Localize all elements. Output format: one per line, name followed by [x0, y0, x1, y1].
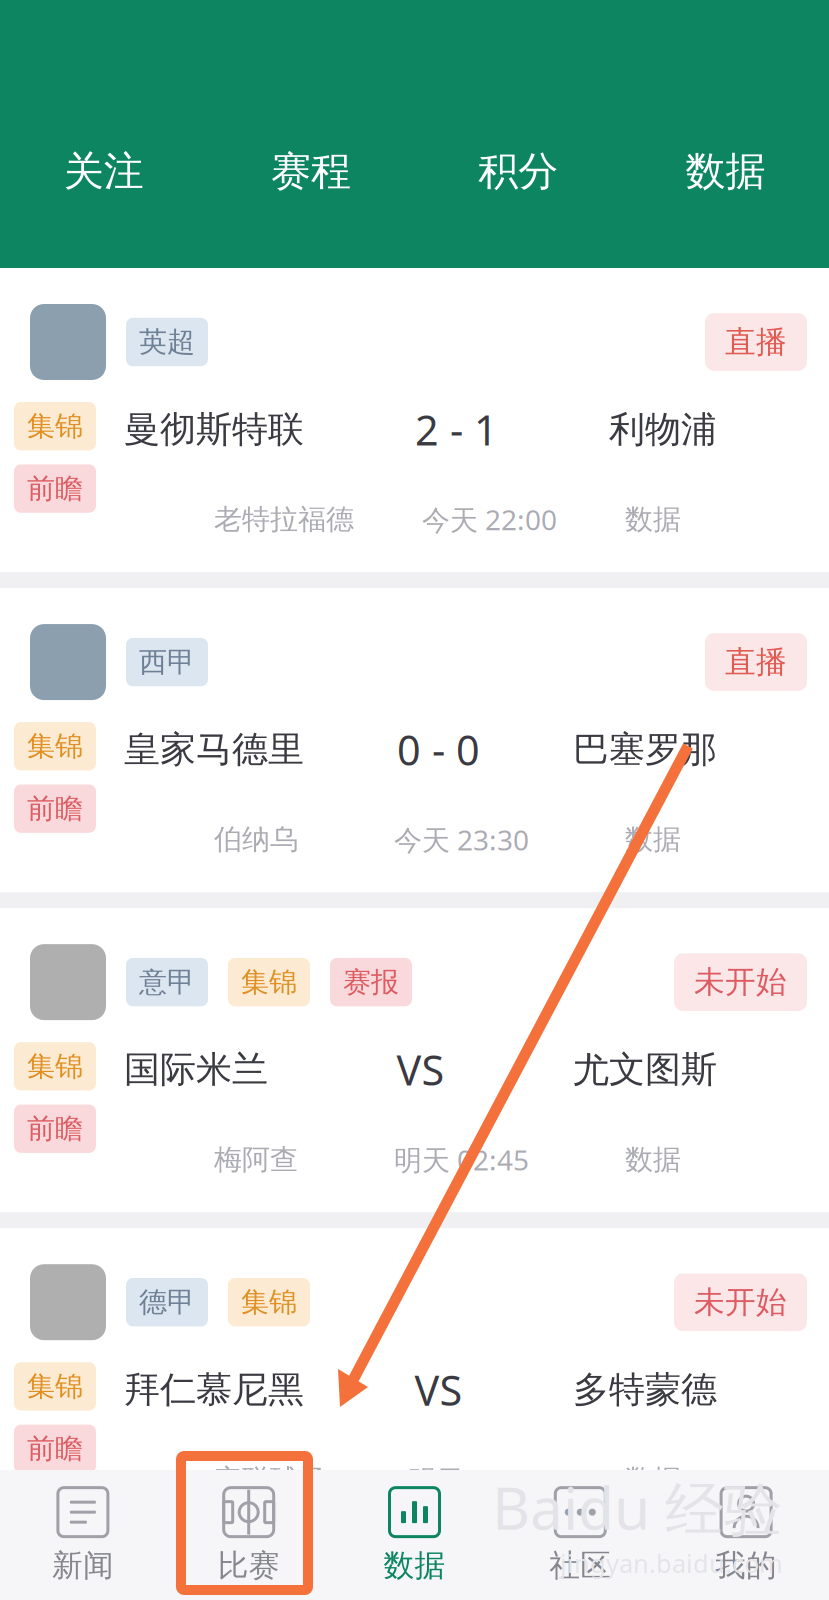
- staticText: 社区: [549, 1547, 611, 1584]
- staticText: 前瞻: [27, 791, 83, 826]
- staticText: VS: [414, 1362, 462, 1417]
- staticText: 2 - 1: [415, 402, 498, 457]
- staticText: 集锦: [27, 729, 83, 763]
- staticText: 集锦: [241, 965, 297, 999]
- staticText: VS: [396, 1042, 444, 1097]
- staticText: 今天 23:30: [394, 821, 529, 858]
- staticText: 新闻: [52, 1547, 114, 1584]
- staticText: 拜仁慕尼黑: [124, 1367, 304, 1412]
- staticText: 梅阿查: [214, 1142, 298, 1177]
- staticText: 皇家马德里: [124, 727, 304, 772]
- button[interactable]: 关注: [0, 147, 207, 196]
- button[interactable]: 德甲: [0, 1228, 829, 1532]
- staticText: 未开始: [694, 963, 787, 1001]
- staticText: 前瞻: [27, 471, 83, 506]
- staticText: 德甲: [139, 1285, 195, 1319]
- staticText: 伯纳乌: [214, 822, 298, 857]
- staticText: 赛程: [271, 147, 351, 196]
- staticText: 直播: [725, 643, 787, 681]
- staticText: 我的: [715, 1547, 777, 1584]
- staticText: 数据: [625, 1142, 681, 1177]
- staticText: 数据: [383, 1547, 445, 1584]
- staticText: 数据: [625, 822, 681, 857]
- staticText: 集锦: [241, 1285, 297, 1319]
- button[interactable]: 意甲: [0, 908, 829, 1212]
- button[interactable]: 积分: [414, 147, 622, 196]
- staticText: 前瞻: [27, 1432, 83, 1466]
- button[interactable]: 数据: [332, 1462, 497, 1600]
- staticText: 曼彻斯特联: [124, 407, 304, 451]
- staticText: Baidu 经验: [492, 1468, 783, 1546]
- button[interactable]: 新闻: [0, 1462, 166, 1600]
- staticText: 西甲: [139, 645, 195, 679]
- staticText: 未开始: [694, 1283, 787, 1321]
- staticText: 数据: [625, 1462, 681, 1497]
- staticText: 国际米兰: [124, 1047, 268, 1092]
- staticText: 集锦: [27, 1049, 83, 1083]
- button[interactable]: 比赛: [166, 1462, 332, 1600]
- button[interactable]: 西甲: [0, 588, 829, 892]
- button[interactable]: 我的: [663, 1462, 829, 1600]
- staticText: 关注: [64, 147, 144, 196]
- staticText: 意甲: [139, 965, 195, 999]
- staticText: 数据: [685, 147, 765, 196]
- staticText: 安联球场: [214, 1462, 326, 1497]
- staticText: 集锦: [27, 409, 83, 443]
- staticText: 利物浦: [609, 407, 717, 451]
- staticText: 多特蒙德: [573, 1367, 717, 1412]
- button[interactable]: 社区: [497, 1462, 663, 1600]
- staticText: 直播: [725, 323, 787, 361]
- staticText: 尤文图斯: [573, 1047, 717, 1092]
- staticText: 赛报: [343, 965, 399, 999]
- staticText: 集锦: [27, 1369, 83, 1404]
- staticText: 数据: [625, 502, 681, 537]
- staticText: 英超: [139, 325, 195, 359]
- staticText: 明天 02:45: [394, 1141, 529, 1178]
- button[interactable]: 赛程: [207, 147, 414, 196]
- staticText: 巴塞罗那: [573, 727, 717, 772]
- button[interactable]: 英超: [0, 268, 829, 572]
- staticText: 积分: [478, 147, 558, 196]
- staticText: 老特拉福德: [214, 502, 354, 537]
- staticText: 明天 03:00: [408, 1461, 543, 1498]
- staticText: 0 - 0: [397, 722, 480, 777]
- staticText: 前瞻: [27, 1111, 83, 1146]
- staticText: 比赛: [218, 1547, 280, 1584]
- staticText: jingyan.baidu.com: [560, 1546, 783, 1580]
- button[interactable]: 数据: [622, 147, 829, 196]
- staticText: 今天 22:00: [422, 501, 557, 538]
